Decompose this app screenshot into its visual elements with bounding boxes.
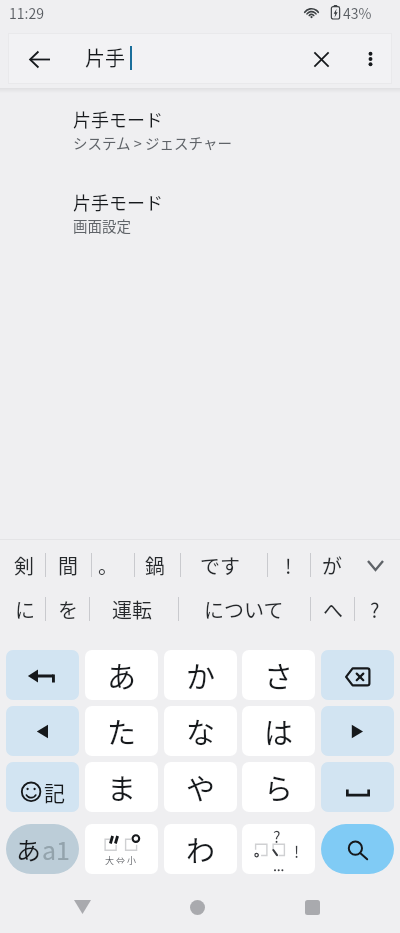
staticText: ま xyxy=(107,766,137,808)
button[interactable]: に xyxy=(8,587,41,631)
button[interactable]: Hide keyboard xyxy=(58,883,106,931)
staticText: a1 xyxy=(42,831,70,867)
button[interactable]: か xyxy=(164,650,237,700)
button[interactable]: 片手モード xyxy=(0,104,400,160)
staticText: システム > ジェスチャー xyxy=(73,132,232,153)
button[interactable]: た xyxy=(85,706,158,756)
button[interactable]: を xyxy=(51,587,84,631)
button[interactable]: Emoji and symbols xyxy=(6,762,79,812)
staticText: は xyxy=(264,710,294,752)
staticText: 片手モード xyxy=(73,106,163,132)
staticText: 記 xyxy=(44,777,65,807)
staticText: について xyxy=(204,595,284,624)
button[interactable]: Recent apps xyxy=(288,883,336,931)
button[interactable]: ! xyxy=(272,543,305,587)
staticText: 画面設定 xyxy=(73,215,131,236)
button[interactable]: ? xyxy=(358,587,391,631)
button[interactable]: や xyxy=(164,762,237,812)
button[interactable]: Dakuten and small kana xyxy=(85,824,158,874)
button[interactable]: Move cursor right xyxy=(321,706,394,756)
staticText: あ xyxy=(16,831,42,867)
button[interactable]: わ xyxy=(164,824,237,874)
staticText: 鍋 xyxy=(145,551,165,580)
staticText: あ xyxy=(107,654,137,696)
staticText: 片手 xyxy=(85,43,125,72)
button[interactable]: について xyxy=(196,587,292,631)
staticText: ! xyxy=(285,551,292,580)
button[interactable]: さ xyxy=(242,650,315,700)
staticText: や xyxy=(186,766,216,808)
staticText: です xyxy=(200,551,240,580)
staticText: た xyxy=(107,710,137,752)
staticText: 運転 xyxy=(112,595,152,624)
staticText: に xyxy=(15,595,35,624)
staticText: 大 ⇔ 小 xyxy=(105,854,137,867)
staticText: 間 xyxy=(58,551,78,580)
button[interactable]: 片手モード xyxy=(0,187,400,243)
button[interactable]: 剣 xyxy=(7,543,40,587)
staticText: ら xyxy=(264,766,294,808)
button[interactable]: へ xyxy=(316,587,349,631)
button[interactable]: あ xyxy=(85,650,158,700)
staticText: 。 xyxy=(98,551,118,580)
staticText: を xyxy=(58,595,78,624)
button[interactable]: ま xyxy=(85,762,158,812)
staticText: わ xyxy=(186,828,216,870)
staticText: さ xyxy=(264,654,294,696)
staticText: 43% xyxy=(343,3,372,23)
button[interactable]: More options xyxy=(350,39,390,79)
staticText: ! xyxy=(294,839,300,862)
button[interactable]: な xyxy=(164,706,237,756)
button[interactable]: More suggestions xyxy=(355,545,395,585)
button[interactable]: Punctuation xyxy=(242,824,315,874)
button[interactable]: Space xyxy=(321,762,394,812)
button[interactable]: 鍋 xyxy=(138,543,171,587)
button[interactable]: ら xyxy=(242,762,315,812)
button[interactable]: は xyxy=(242,706,315,756)
button[interactable]: 間 xyxy=(51,543,84,587)
staticText: へ xyxy=(323,595,343,624)
staticText: ? xyxy=(370,595,380,624)
button[interactable]: Search xyxy=(321,824,394,874)
button[interactable]: Home xyxy=(173,883,221,931)
staticText: か xyxy=(186,654,216,696)
staticText: な xyxy=(186,710,216,752)
staticText: 片手モード xyxy=(73,189,163,215)
button[interactable]: Move cursor left xyxy=(6,706,79,756)
staticText: 剣 xyxy=(14,551,34,580)
button[interactable]: です xyxy=(193,543,247,587)
button[interactable]: Clear search xyxy=(301,39,341,79)
button[interactable]: Return xyxy=(6,650,79,700)
staticText: 11:29 xyxy=(9,3,44,23)
staticText: ? xyxy=(273,824,281,847)
button[interactable]: が xyxy=(315,543,348,587)
button[interactable]: 運転 xyxy=(105,587,159,631)
button[interactable]: Switch input mode xyxy=(6,824,79,874)
button[interactable]: 。 xyxy=(91,543,124,587)
button[interactable]: Delete xyxy=(321,650,394,700)
staticText: が xyxy=(322,551,342,580)
button[interactable]: Back xyxy=(19,39,59,79)
